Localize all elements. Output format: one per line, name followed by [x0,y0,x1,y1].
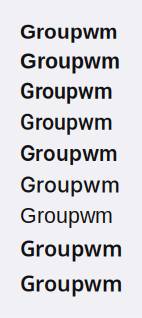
staticText: Groupwm [20,79,113,104]
staticText: Groupwm [20,172,120,198]
staticText: Groupwm [20,110,113,135]
staticText: Groupwm [20,204,113,227]
staticText: Groupwm [20,269,122,298]
staticText: Groupwm [20,20,117,43]
staticText: Groupwm [20,141,118,166]
staticText: Groupwm [20,49,120,73]
staticText: Groupwm [20,234,122,263]
